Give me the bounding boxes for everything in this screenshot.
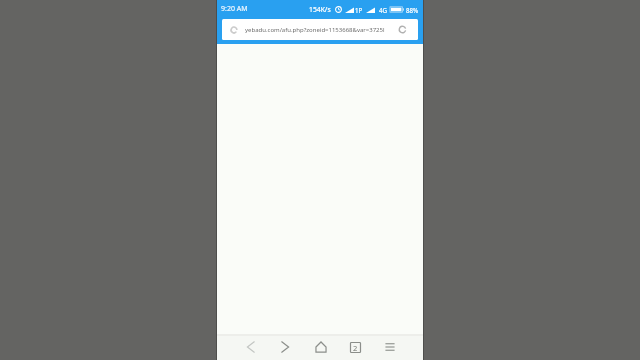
staticText: yebadu.com/afu.php?zoneid=1153668&var=37… xyxy=(245,26,385,34)
staticText: 4G xyxy=(379,6,388,14)
button[interactable]: Reload page xyxy=(222,19,418,40)
button[interactable]: Home xyxy=(303,336,338,358)
staticText: 9:20 AM xyxy=(221,4,248,14)
staticText: 88% xyxy=(406,6,419,14)
staticText: 2 xyxy=(353,343,358,353)
staticText: 1P xyxy=(355,6,363,14)
button[interactable]: Reload page xyxy=(230,26,238,34)
button[interactable]: Forward xyxy=(268,336,303,358)
button[interactable]: Back xyxy=(233,336,268,358)
other: Stop loading xyxy=(398,25,407,34)
staticText: 154K/s xyxy=(309,5,331,14)
button[interactable]: Menu xyxy=(373,336,408,358)
button[interactable]: Tabs xyxy=(338,336,373,358)
